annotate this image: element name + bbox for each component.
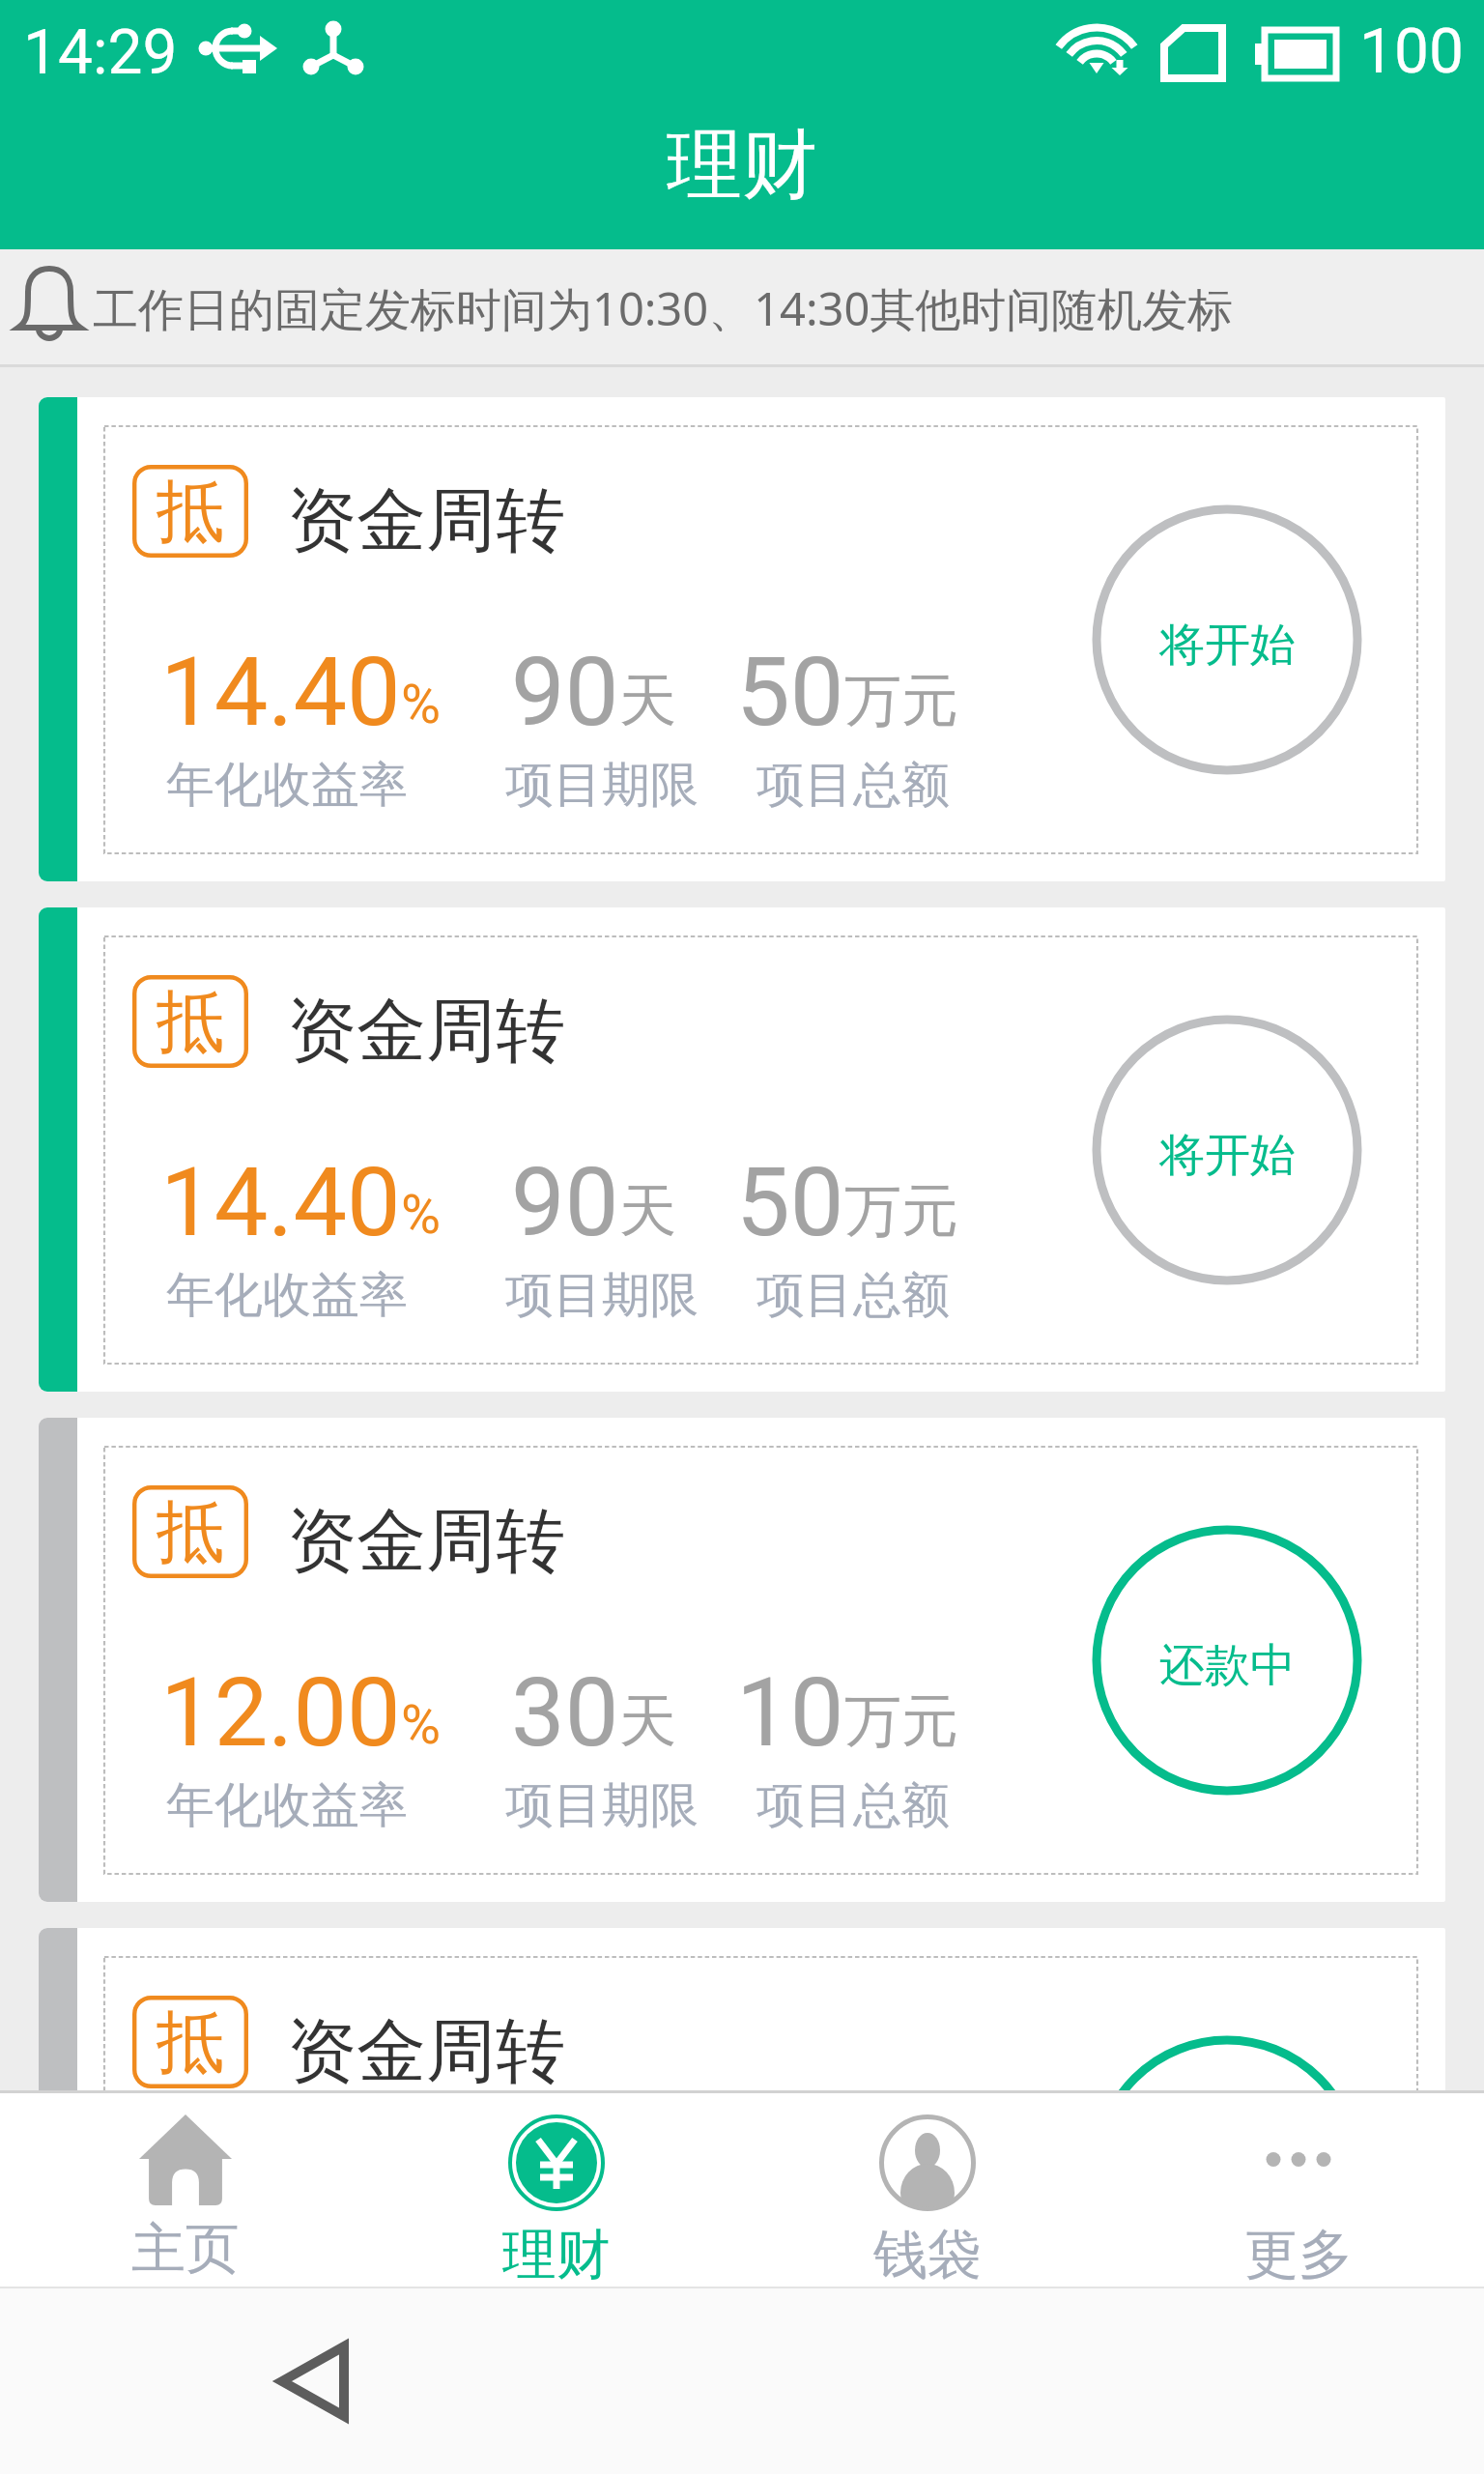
staticText: 项目总额: [756, 1775, 950, 1836]
staticText: 钱袋: [873, 2221, 982, 2287]
staticText: 项目期限: [505, 1265, 699, 1326]
staticText: 天: [619, 1175, 676, 1247]
staticText: 天: [619, 665, 676, 736]
staticText: 万元: [844, 1685, 958, 1757]
staticText: 项目总额: [756, 755, 950, 816]
staticText: 万元: [844, 1175, 958, 1247]
staticText: 资金周转: [287, 988, 565, 1076]
button[interactable]: 抵: [39, 397, 1445, 881]
staticText: 50: [736, 1146, 844, 1258]
staticText: 项目期限: [505, 1775, 699, 1836]
staticText: 万元: [844, 665, 958, 736]
button[interactable]: 更多: [1113, 2093, 1484, 2287]
staticText: 理财: [502, 2221, 611, 2287]
staticText: 主页: [131, 2215, 240, 2284]
button[interactable]: 抵: [39, 1928, 1445, 2090]
staticText: 将开始: [1159, 617, 1296, 674]
staticText: 100: [1359, 15, 1464, 88]
staticText: 资金周转: [287, 2008, 565, 2090]
staticText: 天: [619, 1685, 676, 1757]
button[interactable]: 抵: [39, 907, 1445, 1392]
staticText: 90: [511, 636, 619, 748]
button[interactable]: 理财: [371, 2093, 742, 2287]
staticText: 90: [511, 1146, 619, 1258]
staticText: 年化收益率: [166, 1775, 408, 1836]
staticText: 年化收益率: [166, 1265, 408, 1326]
staticText: 50: [736, 636, 844, 748]
staticText: %: [401, 1693, 442, 1757]
staticText: 还款中: [1159, 1637, 1296, 1694]
button[interactable]: 抵: [39, 1418, 1445, 1902]
staticText: 将开始: [1159, 1127, 1296, 1184]
staticText: %: [401, 673, 442, 736]
staticText: 10: [736, 1656, 844, 1769]
staticText: 理财: [667, 118, 817, 213]
staticText: 年化收益率: [166, 755, 408, 816]
button[interactable]: 还款中: [1092, 1525, 1362, 1796]
staticText: 14.40: [160, 1146, 401, 1258]
staticText: 30: [511, 1656, 619, 1769]
button[interactable]: Back: [274, 2335, 371, 2428]
staticText: 项目期限: [505, 755, 699, 816]
staticText: 14.40: [160, 636, 401, 748]
staticText: 资金周转: [287, 477, 565, 565]
staticText: %: [401, 1183, 442, 1247]
staticText: 更多: [1244, 2221, 1353, 2287]
staticText: 14:29: [23, 16, 178, 89]
staticText: 抵: [157, 980, 224, 1065]
staticText: 资金周转: [287, 1498, 565, 1586]
staticText: 12.00: [160, 1656, 401, 1769]
staticText: 抵: [157, 470, 224, 555]
button[interactable]: 还款中: [1092, 2035, 1362, 2090]
staticText: 项目总额: [756, 1265, 950, 1326]
button[interactable]: 钱袋: [742, 2093, 1113, 2287]
staticText: 工作日的固定发标时间为10:30、14:30其他时间随机发标: [93, 277, 1234, 339]
button[interactable]: 将开始: [1092, 504, 1362, 775]
button[interactable]: 将开始: [1092, 1015, 1362, 1285]
staticText: 抵: [157, 2000, 224, 2086]
staticText: 抵: [157, 1490, 224, 1575]
button[interactable]: 主页: [0, 2093, 371, 2287]
